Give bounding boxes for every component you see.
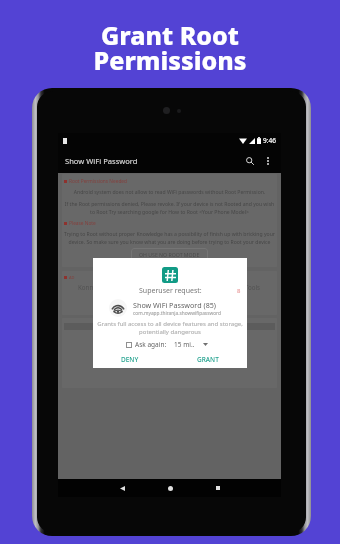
button[interactable]: GRANT bbox=[195, 353, 221, 364]
button[interactable]: OH USE NO ROOT MODE bbox=[131, 248, 208, 261]
button[interactable]: Back bbox=[98, 479, 146, 497]
staticText: If the Root permissions denied, Please r… bbox=[64, 201, 275, 215]
staticText: Ask again: bbox=[135, 340, 167, 349]
staticText: 9:46 bbox=[263, 136, 276, 145]
staticText: DENY bbox=[121, 355, 139, 362]
button[interactable]: DENY bbox=[119, 353, 141, 364]
staticText: 8 bbox=[237, 287, 241, 295]
staticText: 15 mi.. bbox=[174, 340, 195, 349]
staticText: Android system does not allow to read Wi… bbox=[64, 189, 275, 196]
staticText: Trying to Root without proper Knowledge … bbox=[64, 231, 275, 245]
staticText: Grants full access to all device feature… bbox=[96, 320, 244, 336]
staticText: com.myapp.thiranja.showwifipassword bbox=[133, 310, 221, 317]
staticText: Please Note bbox=[69, 220, 96, 227]
staticText: Konnect bbox=[78, 283, 102, 291]
staticText: Root Permissions Needed bbox=[69, 178, 127, 185]
button[interactable]: Ask again checkbox bbox=[126, 342, 132, 348]
staticText: Grant Root Permissions bbox=[0, 18, 340, 78]
staticText: Show WiFi Password (85) bbox=[133, 300, 217, 310]
staticText: OH USE NO ROOT MODE bbox=[139, 251, 200, 258]
button[interactable]: Search bbox=[241, 152, 259, 170]
staticText: Tools bbox=[245, 283, 261, 291]
button[interactable]: Recents bbox=[194, 479, 242, 497]
button[interactable]: Home bbox=[146, 479, 194, 497]
staticText: AD bbox=[69, 275, 75, 280]
staticText: Show WiFi Password bbox=[65, 156, 138, 166]
staticText: GRANT bbox=[197, 355, 219, 362]
button[interactable]: More options bbox=[259, 152, 277, 170]
staticText: Superuser request: bbox=[139, 286, 202, 296]
